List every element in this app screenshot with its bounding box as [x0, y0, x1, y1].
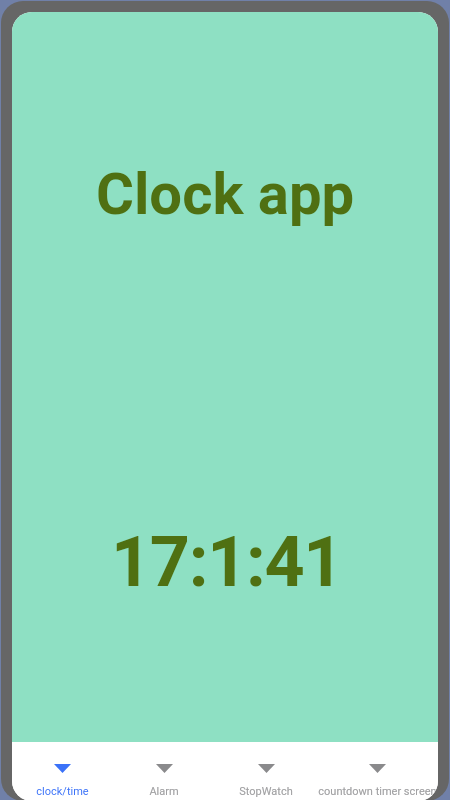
staticText: StopWatch [239, 785, 293, 798]
staticText: clock/time [36, 785, 89, 798]
staticText: Alarm [149, 785, 179, 798]
staticText: 17:1:41 [111, 521, 343, 603]
staticText: Clock app [96, 160, 355, 228]
staticText: countdown timer screen [318, 785, 437, 798]
